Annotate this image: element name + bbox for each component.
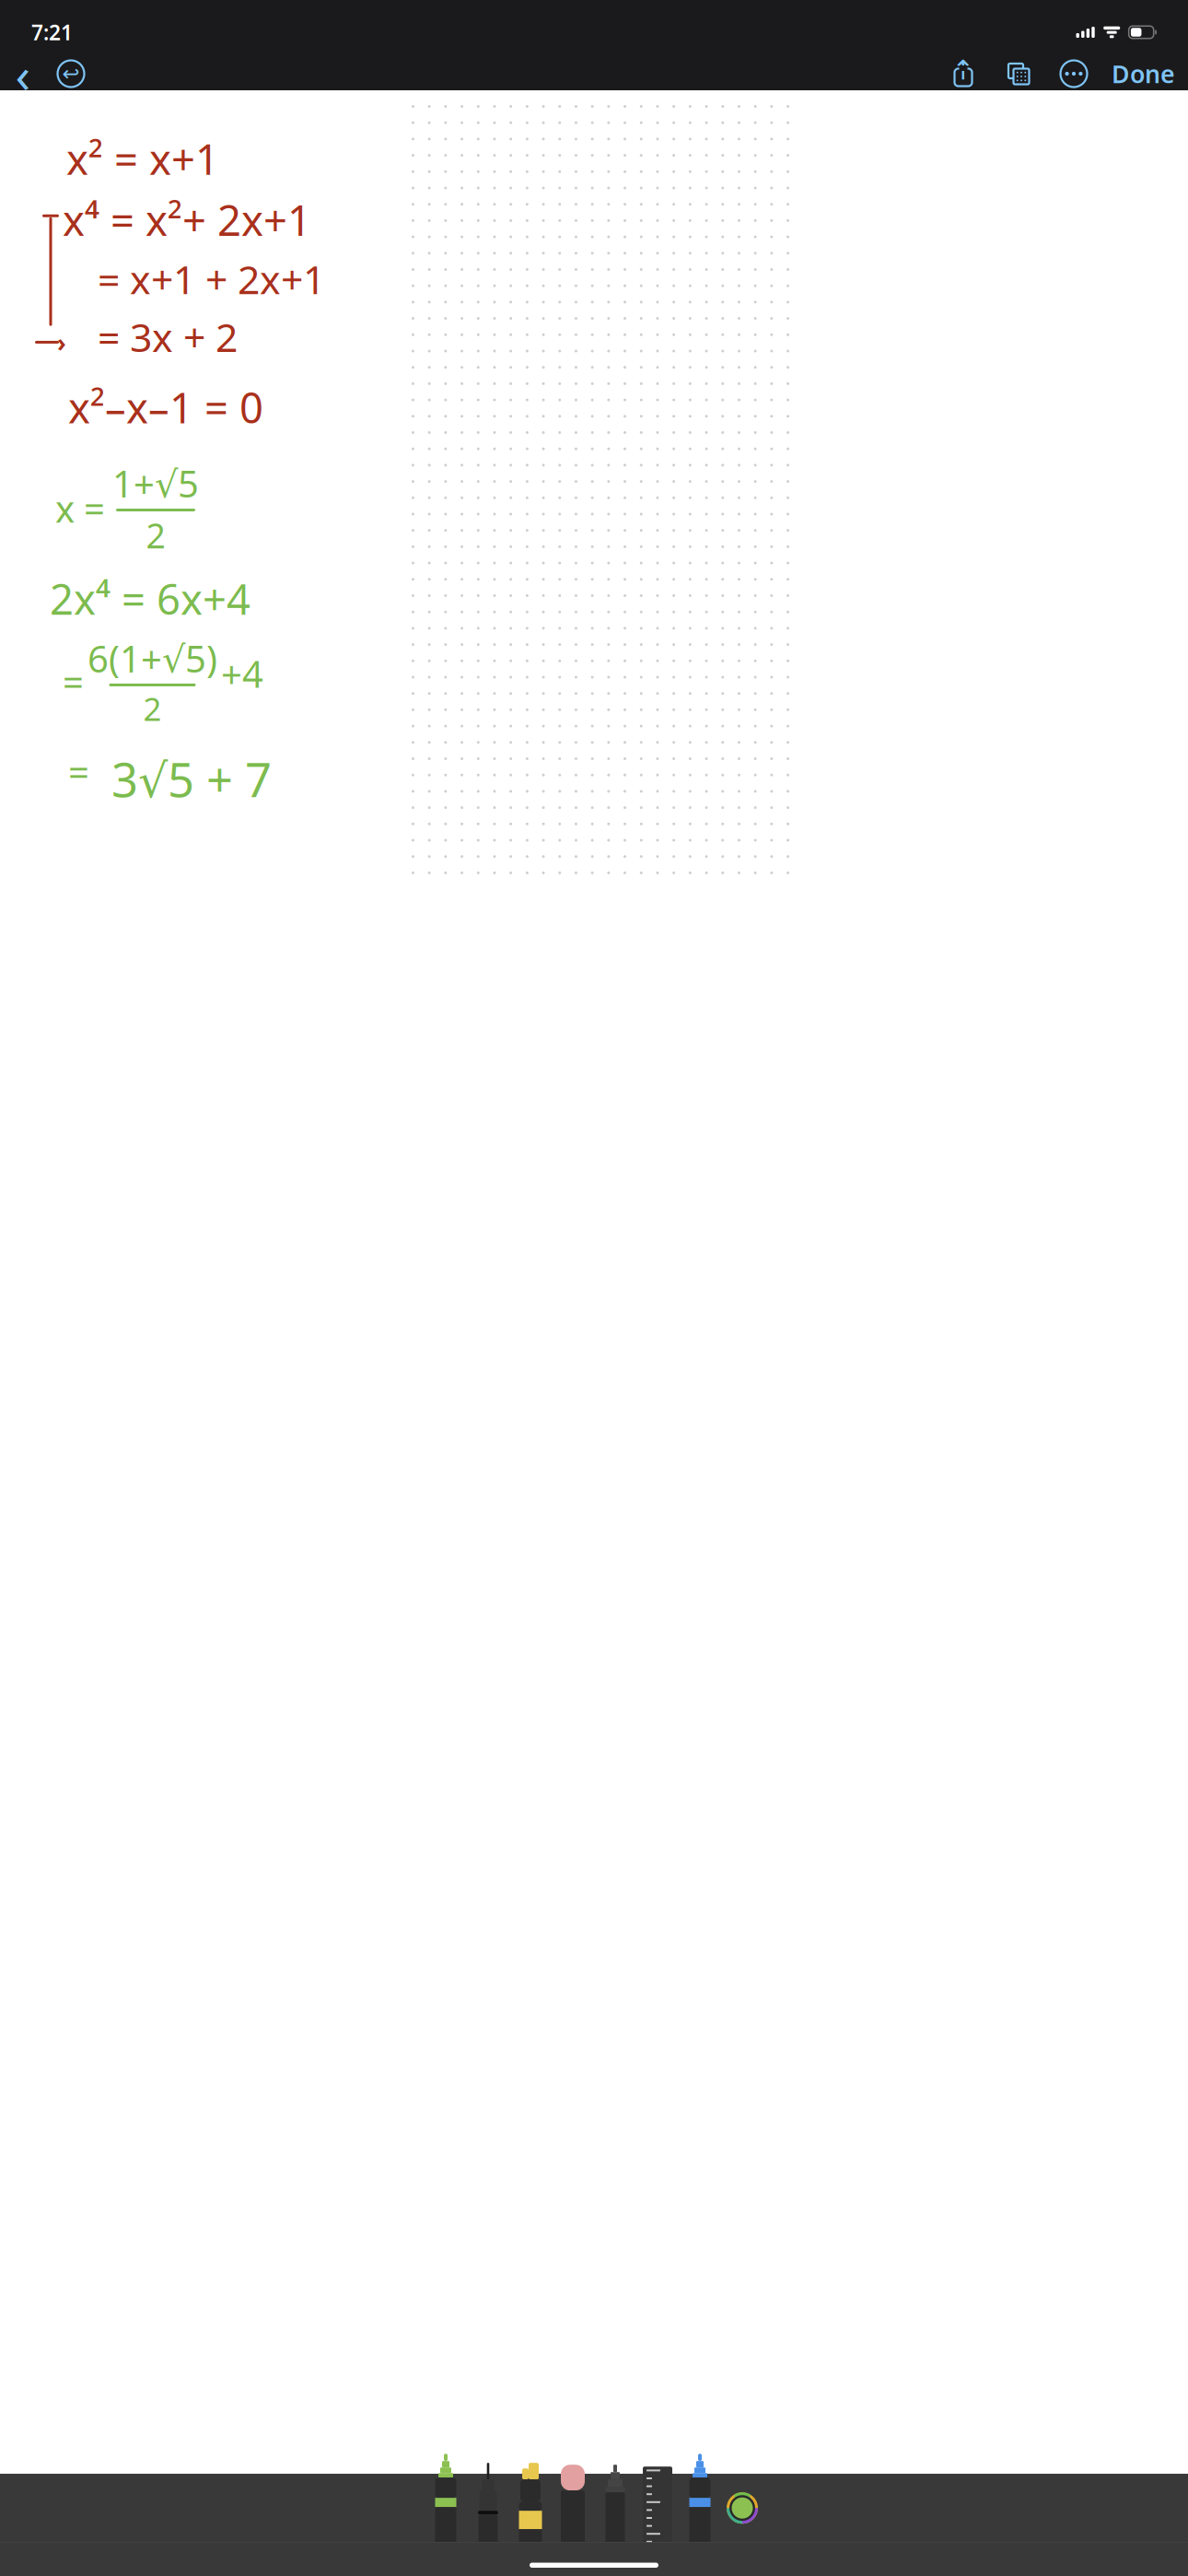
button[interactable]: Highlighter <box>509 2452 552 2564</box>
button[interactable]: Eraser <box>552 2452 594 2564</box>
staticText: 2 <box>143 687 162 730</box>
staticText: = x+1 + 2x+1 <box>98 253 325 305</box>
staticText: 6(1+√5) <box>87 634 217 683</box>
button[interactable]: Back <box>7 53 39 95</box>
staticText: x⁴ = x²+ 2x+1 <box>63 192 311 247</box>
button[interactable]: Fountain pen <box>467 2452 509 2564</box>
button[interactable]: Undo <box>50 53 92 95</box>
staticText: x² = x+1 <box>66 131 219 186</box>
button[interactable]: Share <box>942 53 984 95</box>
staticText: ‹ <box>15 41 31 106</box>
staticText: = <box>68 747 89 796</box>
button[interactable]: More <box>1053 53 1095 95</box>
staticText: › <box>57 326 66 359</box>
button[interactable]: Blue pen <box>679 2452 721 2564</box>
staticText: ↑ <box>952 55 975 85</box>
button[interactable]: Pages <box>997 53 1040 95</box>
staticText: = 3x + 2 <box>98 311 238 363</box>
staticText: = <box>63 657 84 706</box>
staticText: 1+√5 <box>112 459 199 508</box>
staticText: ↩ <box>62 62 80 85</box>
button[interactable]: Done <box>1106 53 1181 95</box>
staticText: x = <box>55 484 105 533</box>
staticText: 7:21 <box>31 18 73 46</box>
staticText: x²–x–1 = 0 <box>68 379 263 435</box>
button[interactable]: Color <box>721 2452 763 2564</box>
staticText: Done <box>1112 57 1175 90</box>
button[interactable]: Lasso <box>594 2452 636 2564</box>
staticText: +4 <box>221 649 263 698</box>
staticText: 2 <box>146 512 165 558</box>
button[interactable]: Ruler <box>636 2452 679 2564</box>
staticText: 2x⁴ = 6x+4 <box>50 571 250 626</box>
staticText: 3√5 + 7 <box>111 748 272 810</box>
button[interactable]: Pen <box>425 2452 467 2564</box>
